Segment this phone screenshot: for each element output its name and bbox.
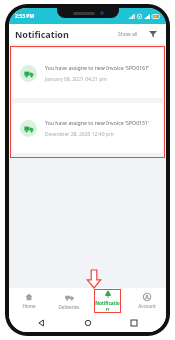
button[interactable]: You have assigne to new Invoice 'SPO0167… <box>12 48 163 98</box>
button[interactable]: Back <box>35 317 47 329</box>
staticText: December 28, 2020 12:40 pm <box>45 131 114 138</box>
staticText: You have assigne to new Invoice 'SPO0167… <box>45 64 150 71</box>
staticText: January 08, 2021 04:21 pm <box>45 76 108 83</box>
button[interactable]: Deliveries <box>49 288 88 314</box>
button[interactable]: You have assigne to new Invoice 'SPO0151… <box>12 103 163 153</box>
staticText: Account <box>138 303 156 309</box>
staticText: Home <box>22 303 36 309</box>
button[interactable]: Notification <box>88 288 127 314</box>
staticText: You have assigne to new Invoice 'SPO0151… <box>45 119 150 126</box>
button[interactable]: Recents <box>128 317 140 329</box>
staticText: 2:53 PM <box>15 13 35 20</box>
staticText: Deliveries <box>58 304 80 310</box>
button[interactable]: Show all <box>116 29 140 40</box>
button[interactable]: Home <box>9 288 49 314</box>
button[interactable]: Filter <box>146 27 160 41</box>
staticText: Show all <box>118 31 138 38</box>
staticText: Notification <box>94 300 121 312</box>
button[interactable]: Home <box>82 317 94 329</box>
button[interactable]: Account <box>127 288 166 314</box>
staticText: Notification <box>15 28 69 40</box>
